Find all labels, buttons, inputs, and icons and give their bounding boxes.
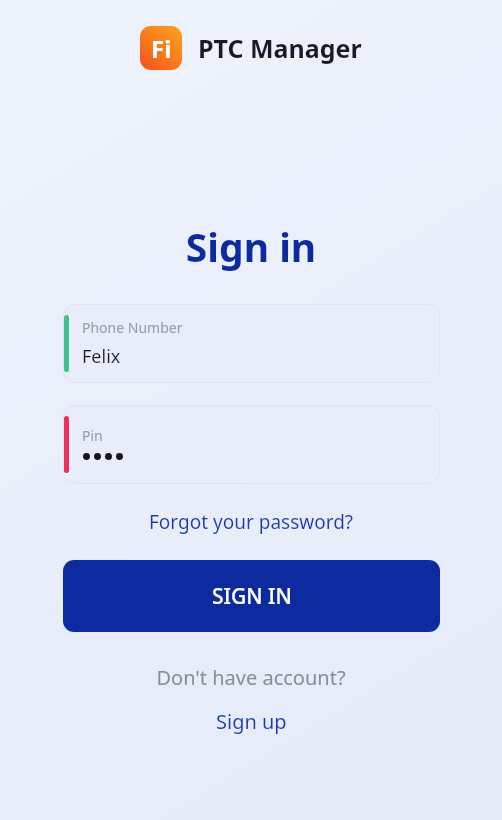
staticText: Sign in — [0, 220, 502, 273]
button[interactable]: Phone Number — [63, 304, 440, 383]
other: PTC Manager logo — [140, 26, 182, 70]
staticText: SIGN IN — [212, 582, 292, 611]
staticText: Forgot your password? — [149, 509, 354, 535]
staticText: PTC Manager — [198, 31, 362, 65]
staticText: Don't have account? — [0, 664, 502, 691]
staticText: Pin — [82, 426, 103, 445]
button[interactable]: Sign up — [206, 705, 297, 738]
staticText: Felix — [82, 344, 121, 369]
staticText: Sign up — [216, 708, 287, 735]
staticText: Fi — [151, 32, 172, 65]
button[interactable]: Pin — [63, 405, 440, 484]
button[interactable]: SIGN IN — [63, 560, 440, 632]
button[interactable]: Forgot your password? — [141, 505, 362, 539]
staticText: Phone Number — [82, 318, 183, 337]
